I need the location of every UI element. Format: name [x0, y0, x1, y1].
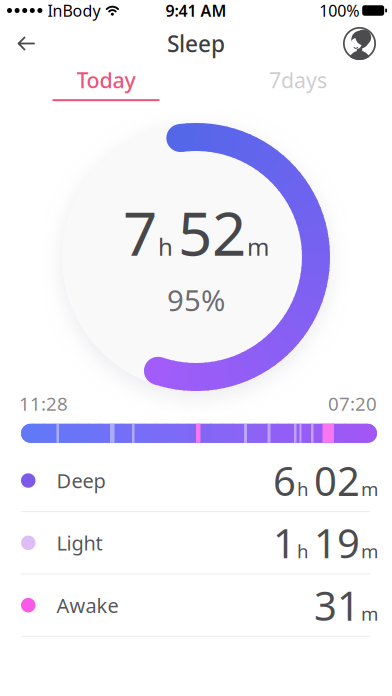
staticText: InBody [47, 0, 100, 21]
staticText: m [361, 601, 378, 626]
button[interactable]: Profile [343, 21, 392, 66]
staticText: 11:28 [19, 391, 68, 416]
button[interactable]: 7days [208, 66, 388, 101]
staticText: Awake [56, 592, 118, 618]
staticText: Light [56, 530, 102, 556]
staticText: 95% [167, 280, 225, 319]
staticText: 7 [123, 193, 157, 272]
staticText: h [158, 231, 173, 262]
staticText: 19 [314, 516, 360, 569]
button[interactable]: Today [4, 66, 208, 101]
staticText: m [361, 539, 378, 563]
staticText: 100% [319, 0, 359, 21]
staticText: Today [76, 66, 135, 94]
staticText: 31 [314, 579, 360, 632]
staticText: 6 [273, 454, 296, 507]
staticText: 52 [178, 193, 246, 272]
staticText: Sleep [167, 28, 225, 58]
staticText: 9:41 AM [165, 0, 226, 21]
staticText: h [297, 539, 309, 563]
staticText: h [297, 476, 309, 501]
staticText: 07:20 [328, 391, 377, 416]
button[interactable]: Back [0, 23, 35, 64]
staticText: Deep [56, 467, 105, 494]
staticText: 7days [269, 66, 327, 94]
staticText: m [247, 231, 269, 262]
staticText: m [361, 476, 378, 501]
staticText: 02 [314, 454, 360, 507]
staticText: 1 [273, 516, 296, 569]
